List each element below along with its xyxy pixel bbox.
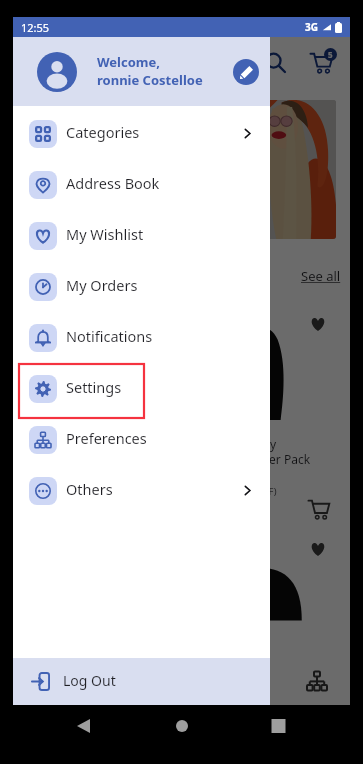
staticText: Welcome, bbox=[97, 53, 160, 71]
staticText: Classic Quality Hooded Winter Pack bbox=[195, 436, 311, 467]
button[interactable]: Notifications bbox=[13, 312, 270, 363]
staticText: 12:55 bbox=[21, 20, 50, 35]
staticText: Categories bbox=[66, 122, 140, 142]
button[interactable]: Premium Quality Hooded Winter Pack bbox=[25, 301, 176, 526]
staticText: 5 bbox=[328, 49, 333, 60]
button[interactable] bbox=[216, 656, 283, 705]
button[interactable]: Classic Quality Hooded Winter Pack bbox=[187, 301, 338, 526]
button[interactable] bbox=[149, 656, 216, 705]
staticText: Preferences bbox=[66, 428, 147, 448]
staticText: Premium Quality Hooded Winter Pack bbox=[33, 436, 149, 467]
button[interactable]: Log Out bbox=[13, 658, 270, 705]
button[interactable] bbox=[81, 656, 149, 705]
button[interactable]: Preferences bbox=[13, 414, 270, 465]
button[interactable]: My Orders bbox=[13, 261, 270, 312]
button[interactable] bbox=[13, 656, 81, 705]
button[interactable]: Categories bbox=[13, 108, 270, 159]
staticText: Address Book bbox=[66, 173, 160, 193]
staticText: ₹ 1,299 (30% OFF) bbox=[195, 485, 277, 498]
button[interactable]: Cart bbox=[304, 45, 338, 79]
staticText: My Wishlist bbox=[66, 224, 144, 244]
staticText: Notifications bbox=[66, 326, 153, 346]
staticText: Settings bbox=[66, 377, 122, 397]
button[interactable]: Edit profile bbox=[233, 59, 259, 85]
button[interactable]: Black Duffel Bag bbox=[187, 526, 338, 656]
staticText: My Orders bbox=[66, 275, 138, 295]
button[interactable]: Search bbox=[258, 45, 292, 79]
staticText: See all bbox=[301, 267, 341, 285]
staticText: 3G bbox=[305, 20, 318, 34]
staticText: ronnie Costelloe bbox=[97, 71, 203, 89]
button[interactable]: Others bbox=[13, 465, 270, 516]
button[interactable]: Address Book bbox=[13, 159, 270, 210]
staticText: Log Out bbox=[63, 671, 116, 690]
staticText: Flash Sale bbox=[27, 267, 101, 287]
staticText: Others bbox=[66, 479, 113, 499]
button[interactable]: My Wishlist bbox=[13, 210, 270, 261]
button[interactable] bbox=[283, 656, 350, 705]
staticText: ₹ 2,499 (45% OFF) bbox=[33, 485, 115, 498]
button[interactable]: Settings bbox=[13, 363, 270, 414]
